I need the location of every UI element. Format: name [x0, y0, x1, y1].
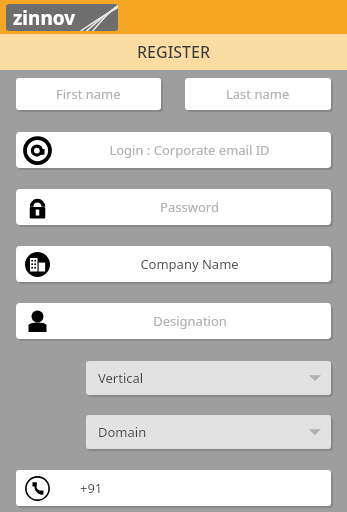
staticText: Last name — [226, 85, 290, 103]
other: Password — [25, 195, 50, 220]
staticText: Company Name — [140, 255, 239, 273]
button[interactable]: Zinnov logo — [6, 4, 118, 31]
staticText: Designation — [153, 312, 227, 330]
other: Phone — [25, 476, 50, 501]
staticText: Domain — [98, 423, 147, 441]
staticText: First name — [56, 85, 121, 103]
button[interactable]: Last name — [185, 78, 331, 110]
staticText: Vertical — [98, 369, 144, 387]
button[interactable]: Email — [16, 132, 331, 168]
other: Designation — [25, 309, 50, 334]
button[interactable]: Phone — [16, 470, 331, 506]
button[interactable]: Vertical — [86, 361, 331, 395]
button[interactable]: Company — [16, 246, 331, 282]
staticText: Password — [160, 198, 219, 216]
button[interactable]: Designation — [16, 303, 331, 339]
button[interactable]: Domain — [86, 415, 331, 449]
staticText: Login : Corporate email ID — [109, 141, 270, 159]
button[interactable]: Password — [16, 189, 331, 225]
staticText: +91 — [80, 479, 103, 497]
staticText: zinnov — [13, 5, 76, 31]
other: Company — [25, 252, 50, 277]
button[interactable]: First name — [16, 78, 161, 110]
staticText: REGISTER — [137, 41, 211, 63]
other: Email — [25, 138, 50, 163]
